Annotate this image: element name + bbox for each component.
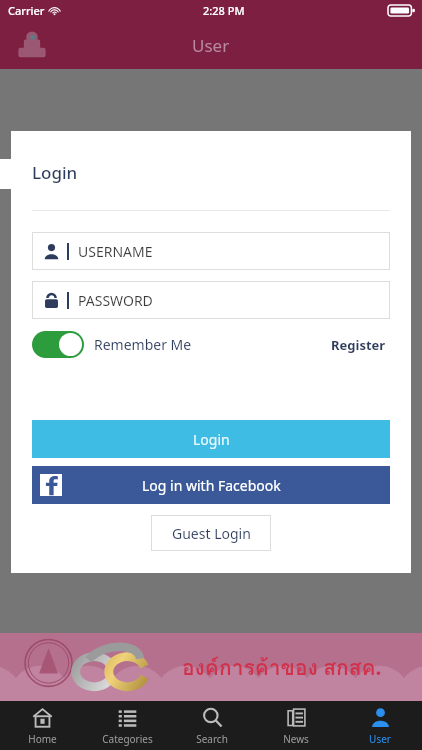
button[interactable]: Home bbox=[0, 701, 85, 750]
staticText: User bbox=[369, 732, 391, 746]
staticText: Home bbox=[28, 732, 57, 746]
staticText: News bbox=[283, 732, 309, 746]
button[interactable]: News bbox=[254, 701, 338, 750]
button[interactable]: Menu bbox=[10, 23, 54, 67]
button[interactable]: Log in with Facebook bbox=[32, 466, 390, 504]
staticText: Login bbox=[32, 161, 78, 184]
button[interactable]: Categories bbox=[85, 701, 170, 750]
staticText: องค์การค้าของ สกสค. bbox=[182, 651, 382, 684]
staticText: PASSWORD bbox=[78, 291, 153, 310]
staticText: Log in with Facebook bbox=[142, 476, 281, 495]
button[interactable]: USERNAME bbox=[32, 232, 390, 270]
staticText: USERNAME bbox=[78, 242, 153, 261]
staticText: Carrier bbox=[8, 3, 45, 18]
button[interactable]: Guest Login bbox=[151, 515, 271, 551]
button[interactable]: Search bbox=[170, 701, 254, 750]
staticText: Search bbox=[196, 732, 228, 746]
staticText: 2:28 PM bbox=[203, 3, 245, 18]
button[interactable]: PASSWORD bbox=[32, 281, 390, 319]
button[interactable]: Login bbox=[32, 420, 390, 458]
button[interactable]: Remember Me bbox=[32, 331, 192, 358]
staticText: User bbox=[192, 34, 230, 57]
staticText: Register bbox=[331, 336, 386, 354]
button[interactable]: Register bbox=[327, 332, 390, 358]
staticText: Guest Login bbox=[172, 524, 251, 543]
staticText: Categories bbox=[102, 732, 153, 746]
staticText: Remember Me bbox=[94, 335, 192, 354]
staticText: Login bbox=[193, 430, 230, 449]
button[interactable]: User bbox=[338, 701, 422, 750]
